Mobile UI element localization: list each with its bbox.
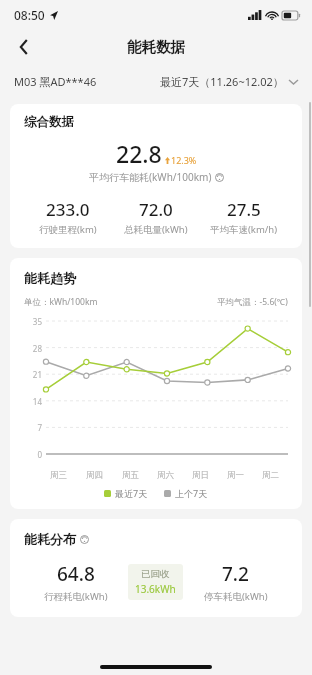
staticText: 233.0 <box>46 198 90 221</box>
button[interactable]: M03 黑AD***46 <box>14 74 97 89</box>
staticText: 35 <box>24 316 42 327</box>
staticText: 13.6kWh <box>135 582 176 596</box>
staticText: 周一 <box>227 470 244 481</box>
button[interactable]: 最近7天（11.26~12.02） <box>160 74 298 89</box>
staticText: 22.8 <box>116 138 162 169</box>
staticText: 能耗数据 <box>127 38 185 56</box>
staticText: 能耗分布 <box>24 531 76 547</box>
staticText: 21 <box>24 369 42 380</box>
staticText: 周六 <box>157 470 174 481</box>
staticText: 总耗电量(kWh) <box>124 223 188 236</box>
staticText: 平均行车能耗(kWh/100km) <box>89 170 212 184</box>
staticText: 27.5 <box>227 198 261 221</box>
staticText: 周三 <box>50 470 67 481</box>
staticText: 周五 <box>122 470 139 481</box>
button[interactable]: 最近7天 <box>104 487 148 499</box>
button[interactable]: Back <box>8 31 40 63</box>
staticText: 平均气温：-5.6(℃) <box>217 296 288 308</box>
staticText: 7 <box>24 422 42 433</box>
button[interactable]: 72.0 <box>112 198 200 236</box>
staticText: 行驶里程(km) <box>39 223 97 236</box>
staticText: 7.2 <box>222 561 249 587</box>
staticText: 能耗趋势 <box>24 270 76 286</box>
staticText: 停车耗电(kWh) <box>204 590 268 603</box>
button[interactable]: 233.0 <box>24 198 112 236</box>
staticText: 周日 <box>192 470 209 481</box>
staticText: 已回收 <box>141 568 170 580</box>
button[interactable]: 已回收 <box>135 568 176 596</box>
staticText: 72.0 <box>139 198 173 221</box>
staticText: M03 黑AD***46 <box>14 74 97 89</box>
staticText: 最近7天（11.26~12.02） <box>160 74 284 89</box>
staticText: 平均车速(km/h) <box>210 223 278 236</box>
staticText: 综合数据 <box>24 114 74 130</box>
staticText: 行程耗电(kWh) <box>44 590 108 603</box>
staticText: 0 <box>24 449 42 460</box>
button[interactable]: 27.5 <box>200 198 288 236</box>
staticText: 周二 <box>262 470 279 481</box>
staticText: 12.3% <box>171 154 197 166</box>
staticText: 14 <box>24 396 42 407</box>
staticText: 周四 <box>86 470 103 481</box>
staticText: 上个7天 <box>175 487 208 499</box>
staticText: 64.8 <box>57 561 95 587</box>
staticText: 最近7天 <box>115 487 148 499</box>
staticText: 单位：kWh/100km <box>24 296 98 308</box>
button[interactable]: 上个7天 <box>164 487 208 499</box>
staticText: 08:50 <box>14 7 45 23</box>
staticText: 28 <box>24 343 42 354</box>
